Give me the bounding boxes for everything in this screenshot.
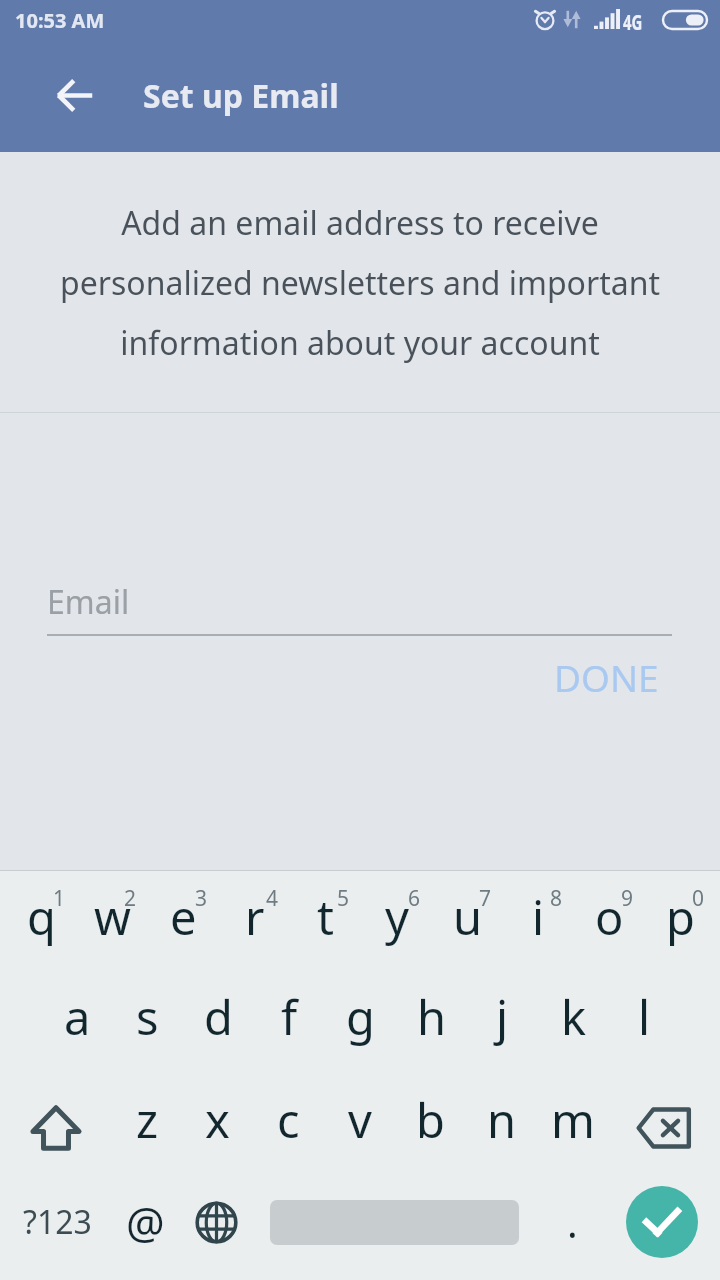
staticText: 5 [337,884,350,913]
button[interactable]: y [361,871,432,973]
button[interactable]: w [77,871,148,973]
staticText: m [551,1088,595,1152]
staticText: p [666,885,695,949]
button[interactable]: c [253,1076,324,1179]
staticText: 3 [195,884,208,913]
button[interactable]: z [112,1076,182,1179]
staticText: r [245,885,265,949]
staticText: b [416,1088,445,1152]
button[interactable]: Enter [606,1179,720,1280]
button[interactable]: f [254,973,325,1076]
staticText: l [638,985,651,1049]
staticText: DONE [554,652,659,702]
staticText: a [64,985,91,1049]
button[interactable]: g [325,973,396,1076]
button[interactable]: o [574,871,645,973]
button[interactable]: Change language [181,1179,251,1280]
staticText: o [595,885,624,949]
staticText: t [317,885,334,949]
staticText: g [346,985,375,1049]
staticText: q [27,885,56,949]
staticText: h [417,985,447,1049]
button[interactable]: h [396,973,467,1076]
staticText: d [204,985,233,1049]
button[interactable]: p [645,871,716,973]
button[interactable]: k [538,973,609,1076]
button[interactable]: v [324,1076,395,1179]
staticText: z [136,1088,159,1152]
button[interactable]: Space [251,1179,538,1280]
staticText: 6 [408,884,421,913]
button[interactable]: b [395,1076,466,1179]
button[interactable]: u [432,871,503,973]
button[interactable]: i [503,871,574,973]
button[interactable]: Back [44,70,104,130]
staticText: Set up Email [143,74,339,118]
staticText: 0 [692,884,705,913]
staticText: c [277,1088,300,1152]
staticText: x [205,1088,230,1152]
staticText: 9 [621,884,634,913]
button[interactable]: m [537,1076,608,1179]
staticText: 1 [53,884,66,913]
staticText: Email [47,580,130,624]
button[interactable]: s [112,973,183,1076]
staticText: s [136,985,159,1049]
button[interactable]: q [5,871,77,973]
staticText: 4G [623,6,643,36]
button[interactable]: ?123 [5,1179,109,1280]
staticText: Add an email address to receive personal… [52,201,668,364]
button[interactable]: @ [109,1179,181,1280]
button[interactable]: t [290,871,361,973]
button[interactable]: Shift [0,1076,112,1179]
staticText: w [94,885,131,949]
button[interactable]: DONE [538,644,675,710]
staticText: 4 [266,884,279,913]
staticText: k [561,985,587,1049]
staticText: f [281,985,298,1049]
button[interactable]: r [219,871,290,973]
button[interactable]: . [538,1179,606,1280]
button[interactable]: Backspace [608,1076,720,1179]
staticText: v [348,1088,372,1152]
staticText: @ [126,1193,165,1252]
button[interactable]: l [609,973,680,1076]
button[interactable]: e [148,871,219,973]
button[interactable]: a [42,973,112,1076]
staticText: e [170,885,197,949]
button[interactable]: n [466,1076,537,1179]
staticText: j [496,985,509,1049]
staticText: n [487,1088,517,1152]
staticText: 7 [479,884,492,913]
staticText: y [385,885,409,949]
staticText: 8 [550,884,563,913]
button[interactable]: Email input field [47,565,672,636]
staticText: i [532,885,545,949]
staticText: u [453,885,483,949]
staticText: . [567,1195,578,1249]
staticText: 2 [124,884,137,913]
button[interactable]: x [182,1076,253,1179]
button[interactable]: j [467,973,538,1076]
staticText: ?123 [23,1200,92,1244]
staticText: 10:53 AM [15,7,105,34]
button[interactable]: d [183,973,254,1076]
